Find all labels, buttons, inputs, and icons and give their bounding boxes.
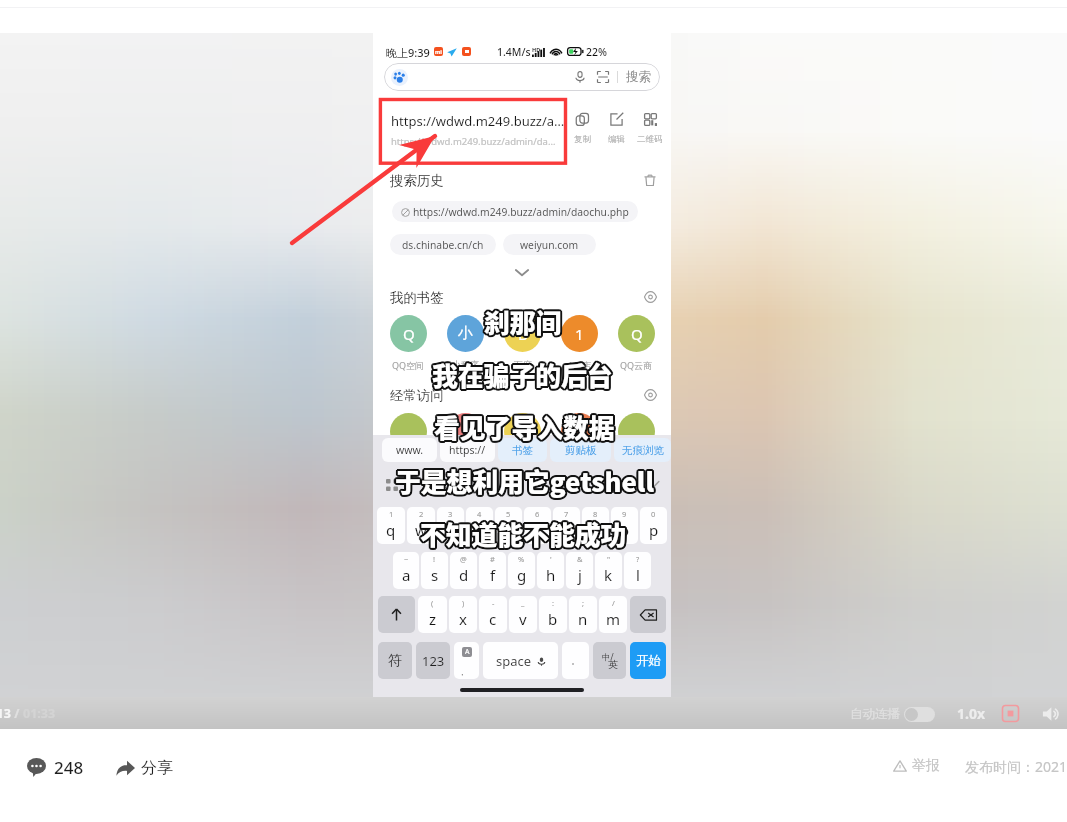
button[interactable]: 自动连播 [850, 706, 935, 722]
button[interactable]: _ [509, 596, 537, 633]
button[interactable]: 中/ [593, 642, 626, 679]
button[interactable]: - [479, 596, 507, 633]
staticText: a [402, 565, 411, 585]
button[interactable] [379, 413, 437, 450]
button[interactable]: 5 [495, 507, 522, 544]
button[interactable] [551, 413, 608, 450]
button[interactable]: 。 [562, 642, 589, 679]
staticText: 1.4M/s [497, 45, 531, 58]
button[interactable]: 编辑 [599, 113, 633, 145]
button[interactable]: @ [450, 552, 477, 589]
button[interactable]: 剪贴板 [550, 438, 611, 462]
button[interactable]: ds.chinabe.cn/ch [390, 234, 496, 255]
button[interactable]: www. [382, 438, 437, 462]
button[interactable]: ? [624, 552, 651, 589]
staticText: 我在骗子的后台 [432, 354, 613, 391]
button[interactable]: weiyun.com [503, 234, 596, 255]
button[interactable]: 小 [437, 315, 494, 370]
button[interactable] [494, 413, 551, 450]
staticText: 不知道能不能成功 [421, 516, 628, 553]
button[interactable]: Q [608, 315, 665, 371]
button[interactable]: 3 [437, 507, 464, 544]
button[interactable]: 语音搜索 [384, 63, 660, 91]
staticText: QQ云商 [620, 359, 653, 371]
button[interactable]: ; [569, 596, 597, 633]
button[interactable]: 隐藏 [640, 288, 660, 306]
staticText: v [519, 609, 527, 629]
button[interactable]: 清除历史 [640, 171, 660, 189]
button[interactable]: 0 [640, 507, 667, 544]
button[interactable]: 分享 [112, 754, 177, 782]
staticText: o [620, 520, 630, 540]
button[interactable]: 9 [611, 507, 638, 544]
staticText: 不知道能不能成功 [420, 515, 627, 552]
button[interactable]: 删除 [630, 596, 666, 633]
staticText: ) [462, 598, 465, 608]
staticText: 看见了导入数据 [433, 407, 614, 444]
staticText: 8 [593, 509, 598, 519]
staticText: HD [532, 46, 541, 53]
staticText: / [11, 705, 23, 722]
button[interactable]: & [566, 552, 593, 589]
staticText: 剪贴板 [565, 444, 597, 457]
staticText: _ [521, 598, 525, 608]
button[interactable] [378, 596, 415, 633]
button[interactable]: 6 [524, 507, 551, 544]
button[interactable]: 二维码 [633, 113, 667, 145]
button[interactable]: " [595, 552, 622, 589]
button[interactable]: 举报 [889, 753, 944, 779]
button[interactable]: 1 [377, 507, 405, 544]
button[interactable]: 隐藏 [640, 386, 660, 404]
staticText: " [607, 554, 611, 564]
button[interactable]: 1 [551, 315, 608, 371]
button[interactable]: # [479, 552, 506, 589]
button[interactable]: A [454, 642, 479, 679]
button[interactable]: space [483, 642, 558, 679]
button[interactable]: ( [418, 596, 447, 633]
button[interactable]: https:// [440, 438, 495, 462]
button[interactable]: 复制 [565, 113, 599, 145]
button[interactable]: 123 [416, 642, 450, 679]
button[interactable]: 音量 [1042, 705, 1060, 723]
staticText: 不知道能不能成功 [418, 516, 625, 553]
button[interactable]: 2 [407, 507, 435, 544]
button[interactable]: ~ [393, 552, 419, 589]
button[interactable]: ) [449, 596, 477, 633]
staticText: 分享 [141, 758, 173, 778]
staticText: 于是想利用它getshell [394, 460, 653, 497]
button[interactable]: 书签 [498, 438, 547, 462]
button[interactable]: % [508, 552, 535, 589]
button[interactable]: 开始 [630, 642, 666, 679]
button[interactable]: https://wdwd.m249.buzz/a… [391, 112, 566, 148]
button[interactable]: https://wdwd.m249.buzz/admin/daochu.php [392, 201, 638, 222]
button[interactable]: / [599, 596, 627, 633]
button[interactable]: ' [537, 552, 564, 589]
staticText: ， [458, 667, 466, 677]
button[interactable]: 7 [553, 507, 580, 544]
button[interactable]: 无痕浏览 [614, 438, 671, 462]
button[interactable]: 收起键盘 [640, 474, 662, 496]
button[interactable]: ! [421, 552, 448, 589]
button[interactable]: 8 [582, 507, 609, 544]
button[interactable]: Q [379, 315, 437, 371]
staticText: 1.0x [957, 704, 986, 723]
button[interactable]: 停止 [1002, 705, 1019, 722]
button[interactable]: B [494, 315, 551, 370]
button[interactable]: : [539, 596, 567, 633]
staticText: 发布时间：2021 [965, 757, 1067, 776]
button[interactable]: 1.0x [957, 704, 986, 723]
staticText: B [518, 324, 528, 344]
button[interactable] [608, 413, 665, 450]
button[interactable]: 248 [23, 752, 88, 783]
staticText: 我在骗子的后台 [430, 357, 611, 394]
staticText: 看见了导入数据 [434, 406, 615, 443]
button[interactable]: 菜单 [382, 475, 402, 495]
button[interactable]: 展开 [509, 265, 535, 279]
staticText: 自动连播 [850, 706, 900, 722]
button[interactable]: 4 [466, 507, 493, 544]
button[interactable]: 符 [378, 642, 412, 679]
button[interactable] [437, 413, 494, 450]
staticText: 刹那间 [482, 303, 560, 340]
staticText: 不知道能不能成功 [422, 514, 629, 551]
staticText: 英 [608, 658, 618, 671]
